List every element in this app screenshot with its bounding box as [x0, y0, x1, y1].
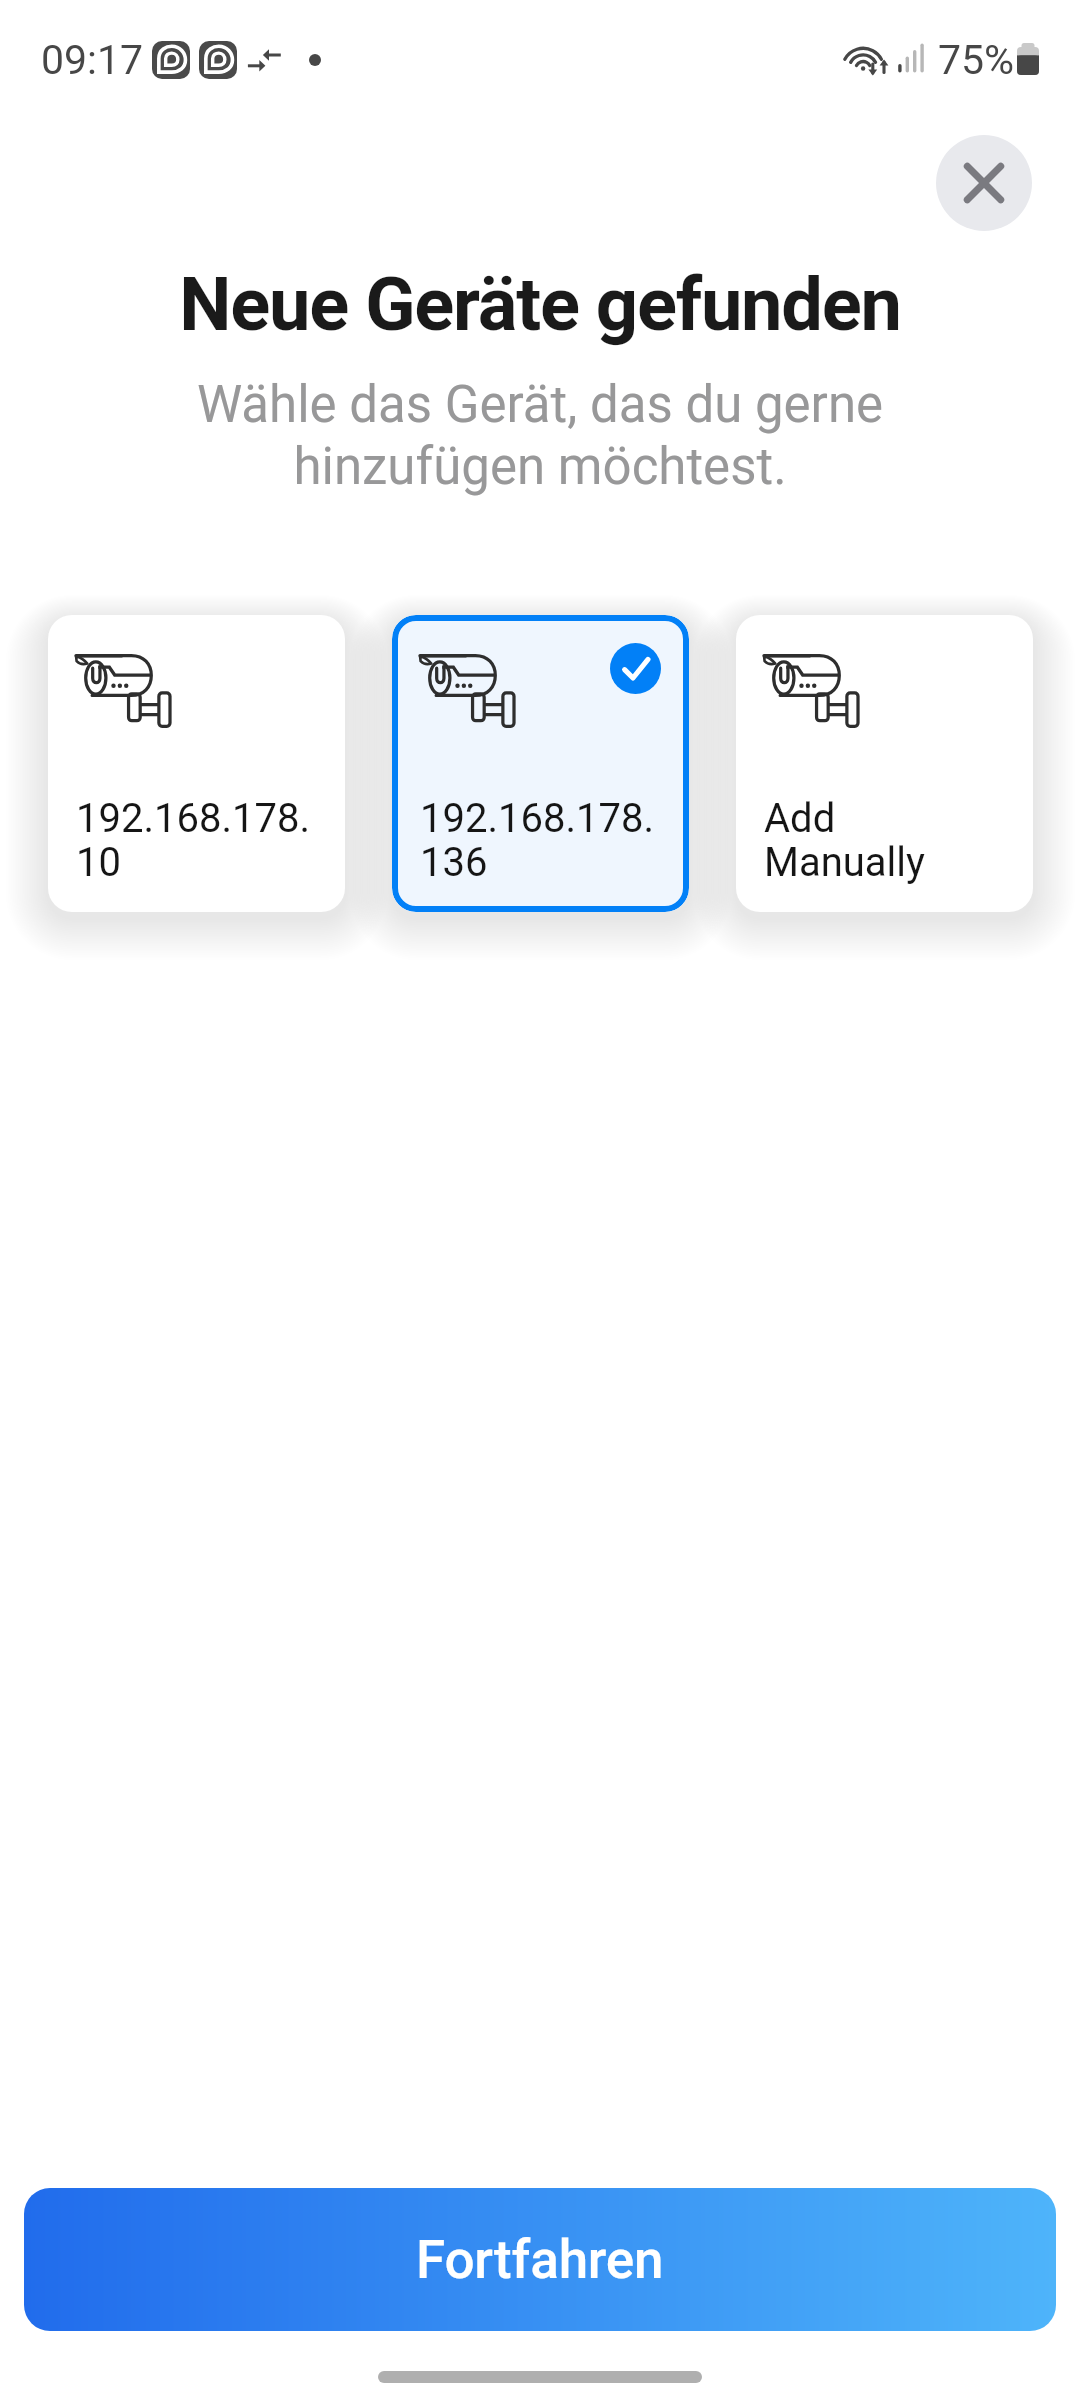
staticText: 09:17 — [41, 36, 144, 84]
staticText: 192.168.178. 136 — [420, 795, 654, 886]
staticText: Wähle das Gerät, das du gerne hinzufügen… — [90, 375, 990, 497]
button[interactable]: 192.168.178. 10 — [48, 615, 345, 912]
staticText: Add Manually — [764, 795, 925, 886]
staticText: Neue Geräte gefunden — [0, 261, 1080, 348]
staticText: 75% — [938, 36, 1015, 84]
button[interactable]: Close — [936, 135, 1032, 231]
button[interactable]: 192.168.178. 136 — [392, 615, 689, 912]
staticText: 192.168.178. 10 — [76, 795, 310, 886]
button[interactable]: Add Manually — [736, 615, 1033, 912]
button[interactable]: Fortfahren — [24, 2188, 1056, 2331]
staticText: Fortfahren — [416, 2229, 664, 2291]
